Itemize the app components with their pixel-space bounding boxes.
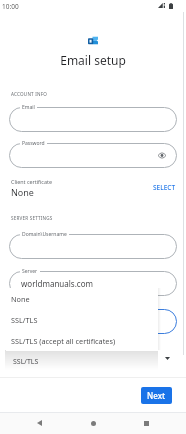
button[interactable]: Next	[141, 387, 172, 404]
staticText: None	[11, 294, 30, 304]
staticText: Client certificate	[11, 178, 52, 185]
staticText: SELECT	[153, 183, 176, 192]
staticText: Next	[147, 390, 166, 401]
staticText: Password	[22, 140, 45, 147]
button[interactable]: SELECT	[148, 180, 181, 195]
button[interactable]	[9, 107, 177, 132]
button[interactable]: Recent apps	[135, 412, 157, 434]
staticText: Email setup	[0, 52, 186, 68]
staticText: Server	[22, 268, 38, 275]
button[interactable]: None	[6, 288, 158, 309]
staticText: Email	[22, 104, 35, 111]
button[interactable]	[9, 234, 177, 259]
button[interactable]: SSL/TLS	[6, 309, 158, 330]
button[interactable]	[9, 143, 177, 168]
staticText: SSL/TLS (accept all certificates)	[11, 336, 116, 346]
staticText: worldmanuals.com	[21, 278, 93, 289]
button[interactable]: SSL/TLS (accept all certificates)	[6, 330, 158, 351]
button[interactable]: Back	[28, 412, 50, 434]
staticText: SERVER SETTINGS	[11, 215, 53, 221]
button[interactable]	[9, 309, 177, 334]
staticText: SSL/TLS	[13, 357, 39, 367]
staticText: ACCOUNT INFO	[11, 91, 48, 97]
button[interactable]	[9, 271, 177, 296]
button[interactable]: Home	[82, 412, 104, 434]
staticText: None	[11, 186, 34, 198]
staticText: 10:00	[2, 2, 19, 11]
staticText: Domain\Username	[22, 231, 67, 238]
staticText: SSL/TLS	[11, 315, 38, 325]
button[interactable]: Expand security type	[165, 357, 170, 360]
